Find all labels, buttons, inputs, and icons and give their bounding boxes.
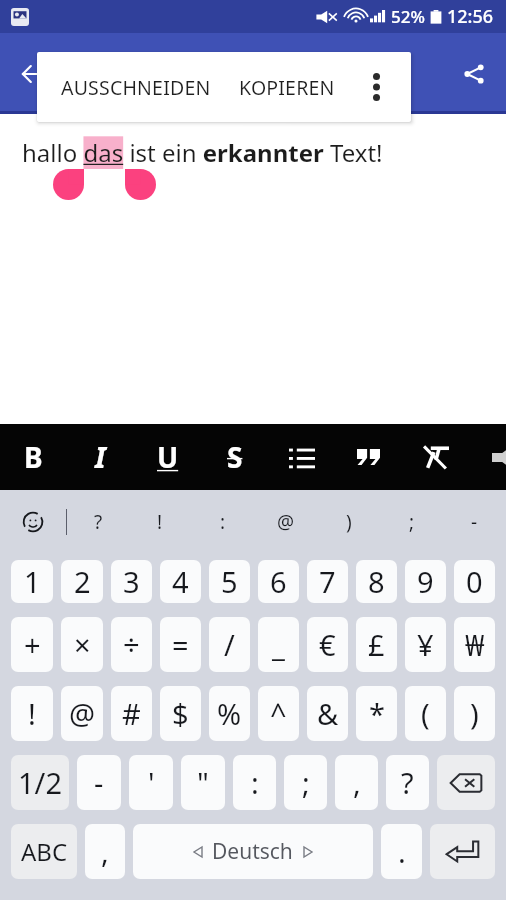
button[interactable]: KOPIEREN (233, 52, 341, 122)
staticText: % (217, 694, 242, 733)
staticText: hallo das ist ein erkannter Text! (22, 136, 383, 169)
button[interactable]: Underline (134, 424, 201, 490)
button[interactable]: ; (380, 490, 443, 553)
staticText: U (157, 438, 179, 476)
button[interactable]: Emoji (0, 490, 66, 553)
button[interactable]: ! (11, 686, 53, 741)
staticText: ? (401, 763, 414, 802)
button[interactable]: Clear format (402, 424, 469, 490)
staticText: AUSSCHNEIDEN (61, 74, 209, 101)
button[interactable]: 2 (61, 560, 103, 603)
button[interactable]: = (160, 617, 201, 672)
staticText: , (101, 832, 109, 871)
button[interactable]: Speak (469, 424, 506, 490)
button[interactable]: 0 (454, 560, 495, 603)
button[interactable]: : (233, 755, 276, 810)
staticText: ! (157, 509, 163, 535)
button[interactable]: ÷ (111, 617, 152, 672)
staticText: ; (409, 509, 415, 535)
staticText: ABC (21, 835, 68, 868)
button[interactable]: - (443, 490, 506, 553)
staticText: 8 (368, 562, 385, 601)
button[interactable]: @ (254, 490, 317, 553)
staticText: ) (346, 509, 352, 535)
button[interactable]: 4 (160, 560, 201, 603)
button[interactable]: ) (454, 686, 495, 741)
button[interactable]: 7 (307, 560, 348, 603)
button[interactable]: % (209, 686, 250, 741)
button[interactable] (430, 824, 495, 879)
button[interactable]: 1 (11, 560, 53, 603)
button[interactable]: . (381, 824, 422, 879)
button[interactable]: : (191, 490, 254, 553)
button[interactable]: / (209, 617, 250, 672)
button[interactable]: 5 (209, 560, 250, 603)
button[interactable]: $ (160, 686, 201, 741)
button[interactable]: 9 (405, 560, 446, 603)
button[interactable]: Back (8, 50, 56, 98)
staticText: 3 (123, 562, 140, 601)
button[interactable]: ! (129, 490, 191, 553)
button[interactable]: - (77, 755, 121, 810)
button[interactable]: ; (284, 755, 327, 810)
button[interactable]: 6 (258, 560, 299, 603)
button[interactable] (437, 755, 495, 810)
button[interactable]: 8 (356, 560, 397, 603)
staticText: ( (421, 694, 430, 733)
button[interactable]: £ (356, 617, 397, 672)
staticText: ÷ (123, 625, 140, 664)
button[interactable]: ^ (258, 686, 299, 741)
staticText: B (24, 438, 43, 476)
button[interactable]: × (61, 617, 103, 672)
button[interactable]: ) (317, 490, 380, 553)
button[interactable]: Italic (67, 424, 134, 490)
staticText: ' (148, 763, 155, 802)
staticText: 5 (221, 562, 238, 601)
button[interactable]: Strikethrough (201, 424, 268, 490)
staticText: . (398, 832, 406, 871)
staticText: 12:56 (447, 4, 494, 29)
staticText: 2 (74, 562, 91, 601)
button[interactable]: Share (450, 50, 498, 98)
button[interactable]: , (335, 755, 378, 810)
button[interactable]: 3 (111, 560, 152, 603)
staticText: + (24, 625, 41, 664)
button[interactable]: # (111, 686, 152, 741)
staticText: € (319, 625, 336, 664)
staticText: KOPIEREN (239, 74, 335, 101)
staticText: 9 (417, 562, 434, 601)
button[interactable]: Quote (335, 424, 402, 490)
staticText: " (197, 763, 209, 802)
staticText: 7 (319, 562, 336, 601)
button[interactable]: ( (405, 686, 446, 741)
staticText: : (220, 509, 226, 535)
staticText: @ (277, 509, 295, 535)
button[interactable]: ? (67, 490, 129, 553)
staticText: = (172, 625, 189, 664)
button[interactable]: & (307, 686, 348, 741)
button[interactable]: ABC (11, 824, 77, 879)
button[interactable]: " (181, 755, 225, 810)
button[interactable]: More options (347, 52, 405, 122)
staticText: 6 (270, 562, 287, 601)
button[interactable]: _ (258, 617, 299, 672)
button[interactable]: + (11, 617, 53, 672)
button[interactable]: € (307, 617, 348, 672)
button[interactable]: ? (386, 755, 429, 810)
button[interactable]: , (85, 824, 125, 879)
staticText: _ (272, 625, 285, 664)
button[interactable]: ₩ (454, 617, 495, 672)
button[interactable]: AUSSCHNEIDEN (61, 52, 209, 122)
staticText: 52% (391, 5, 425, 28)
staticText: S (227, 438, 243, 476)
staticText: / (224, 625, 235, 664)
button[interactable]: Bold (0, 424, 67, 490)
button[interactable]: Deutsch (133, 824, 373, 879)
button[interactable]: @ (61, 686, 103, 741)
button[interactable]: 1/2 (11, 755, 69, 810)
button[interactable]: List (268, 424, 335, 490)
button[interactable]: * (356, 686, 397, 741)
button[interactable]: ' (129, 755, 173, 810)
staticText: ₩ (465, 625, 485, 664)
button[interactable]: ¥ (405, 617, 446, 672)
